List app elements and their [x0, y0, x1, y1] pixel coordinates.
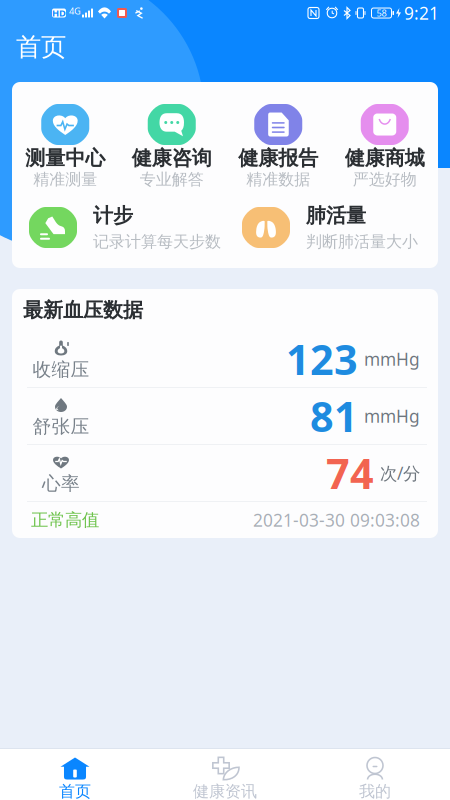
staticText: 计步	[93, 203, 133, 228]
staticText: 123	[286, 332, 358, 386]
staticText: mmHg	[364, 404, 420, 427]
staticText: 首页	[16, 31, 66, 62]
staticText: 58	[376, 7, 386, 19]
staticText: 最新血压数据	[23, 298, 143, 322]
button[interactable]: 健康商城	[331, 104, 438, 188]
button[interactable]: 健康资讯	[150, 748, 300, 800]
staticText: 2021-03-30 09:03:08	[253, 508, 420, 531]
button[interactable]: 健康咨询	[118, 104, 225, 188]
staticText: 测量中心	[25, 146, 105, 170]
staticText: 肺活量	[306, 203, 366, 228]
staticText: 首页	[59, 782, 91, 800]
button[interactable]: 健康报告	[225, 104, 331, 188]
staticText: 收缩压	[32, 358, 89, 381]
staticText: 74	[326, 446, 374, 500]
staticText: 心率	[42, 472, 80, 495]
button[interactable]: 我的	[300, 748, 450, 800]
staticText: 舒张压	[32, 415, 89, 438]
staticText: 精准测量	[33, 170, 97, 189]
button[interactable]: 肺活量	[225, 207, 438, 248]
staticText: 健康资讯	[193, 782, 257, 800]
staticText: 记录计算每天步数	[93, 232, 221, 252]
staticText: 健康商城	[345, 146, 425, 170]
staticText: 严选好物	[353, 170, 417, 189]
staticText: 健康报告	[238, 146, 318, 170]
button[interactable]: 计步	[12, 207, 225, 248]
staticText: HD	[52, 7, 66, 19]
staticText: 81	[310, 389, 358, 443]
staticText: 精准数据	[246, 170, 310, 189]
staticText: 健康咨询	[132, 146, 212, 170]
staticText: 9:21	[404, 1, 439, 24]
staticText: 我的	[359, 782, 391, 800]
staticText: 判断肺活量大小	[306, 232, 418, 252]
staticText: 专业解答	[140, 170, 204, 189]
staticText: 正常高值	[31, 509, 99, 531]
staticText: mmHg	[364, 347, 420, 370]
button[interactable]: 首页	[0, 748, 150, 800]
staticText: 4G	[69, 5, 81, 17]
staticText: 次/分	[380, 461, 420, 484]
button[interactable]: 测量中心	[12, 104, 118, 188]
